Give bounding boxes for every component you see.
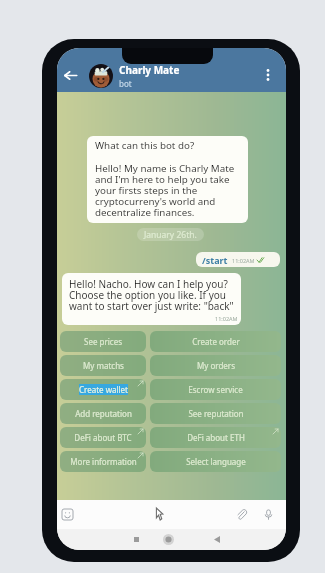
button[interactable]: My matchs <box>60 355 146 376</box>
button[interactable]: Voice message <box>260 506 277 523</box>
button[interactable]: Add reputation <box>60 403 146 424</box>
button[interactable]: See reputation <box>150 403 281 424</box>
staticText: /start <box>202 254 228 266</box>
button[interactable]: Escrow service <box>150 379 281 400</box>
staticText: Create wallet <box>79 384 128 395</box>
button[interactable]: More options <box>259 66 277 84</box>
staticText: DeFi about ETH <box>187 432 245 443</box>
button[interactable]: DeFi about BTC <box>60 427 146 448</box>
button[interactable]: Back <box>206 529 227 550</box>
button[interactable]: DeFi about ETH <box>150 427 281 448</box>
staticText: More information <box>70 456 137 467</box>
button[interactable]: Stickers <box>59 506 76 523</box>
button[interactable]: Create wallet <box>60 379 146 400</box>
staticText: Select language <box>186 456 246 467</box>
staticText: Charly Mate <box>119 63 180 77</box>
staticText: See prices <box>84 336 122 347</box>
button[interactable]: /start <box>196 252 280 267</box>
button[interactable]: More information <box>60 451 146 472</box>
staticText: 11:02AM <box>232 257 255 264</box>
button[interactable]: Hello! Nacho. How can I help you? Choose… <box>62 273 241 325</box>
button[interactable]: What can this bot do? <box>87 136 248 223</box>
staticText: Hello! My name is Charly Mate and I'm he… <box>95 162 235 219</box>
staticText: bot <box>119 78 132 89</box>
button[interactable]: Recents <box>126 529 147 550</box>
staticText: January 26th. <box>144 229 197 241</box>
button[interactable]: Back <box>59 64 81 86</box>
staticText: DeFi about BTC <box>74 432 132 443</box>
staticText: Create order <box>192 336 240 347</box>
button[interactable]: My orders <box>150 355 281 376</box>
button[interactable]: Select language <box>150 451 281 472</box>
staticText: My matchs <box>83 360 124 371</box>
staticText: What can this bot do? <box>95 139 195 152</box>
button[interactable]: See prices <box>60 331 146 352</box>
button[interactable]: Create order <box>150 331 281 352</box>
staticText: Add reputation <box>75 408 132 419</box>
button[interactable]: Attach <box>233 506 250 523</box>
staticText: Escrow service <box>188 384 243 395</box>
staticText: My orders <box>197 360 235 371</box>
staticText: 11:02AM <box>215 315 238 322</box>
staticText: Hello! Nacho. How can I help you? Choose… <box>69 277 234 313</box>
staticText: See reputation <box>188 408 244 419</box>
button[interactable]: Home <box>158 529 179 550</box>
